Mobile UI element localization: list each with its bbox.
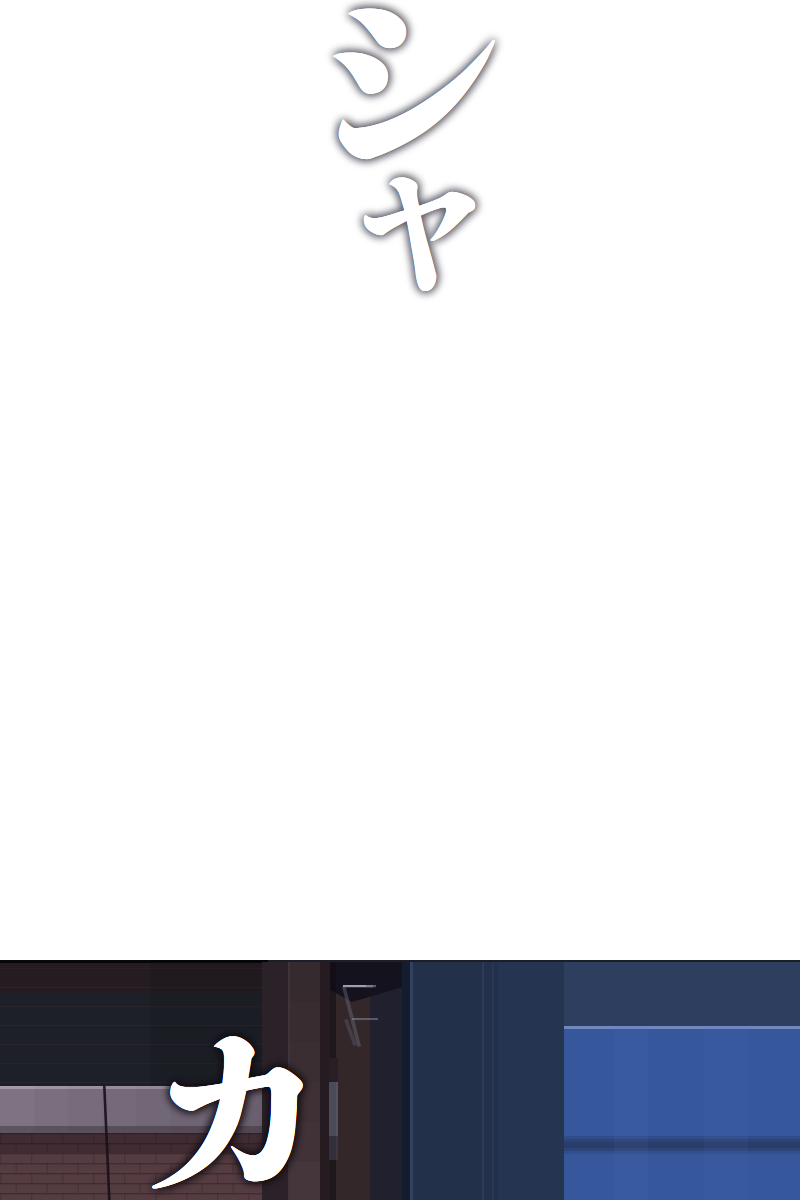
staticText: シ	[308, 0, 508, 213]
staticText: ャ	[337, 84, 502, 324]
staticText: シ	[308, 0, 508, 213]
staticText: ャ	[337, 84, 502, 324]
staticText: カ	[142, 964, 329, 1200]
button[interactable]: Episode page, tap to show reader control…	[0, 0, 800, 1200]
staticText: シ	[308, 0, 508, 213]
staticText: カ	[142, 964, 329, 1200]
staticText: ャ	[337, 84, 502, 324]
staticText: ャ	[337, 84, 502, 324]
staticText: シ	[308, 0, 508, 213]
staticText: カ	[142, 964, 329, 1200]
staticText: ャ	[337, 84, 502, 324]
staticText: カ	[142, 964, 329, 1200]
staticText: カ	[142, 964, 329, 1200]
staticText: シ	[308, 0, 508, 213]
